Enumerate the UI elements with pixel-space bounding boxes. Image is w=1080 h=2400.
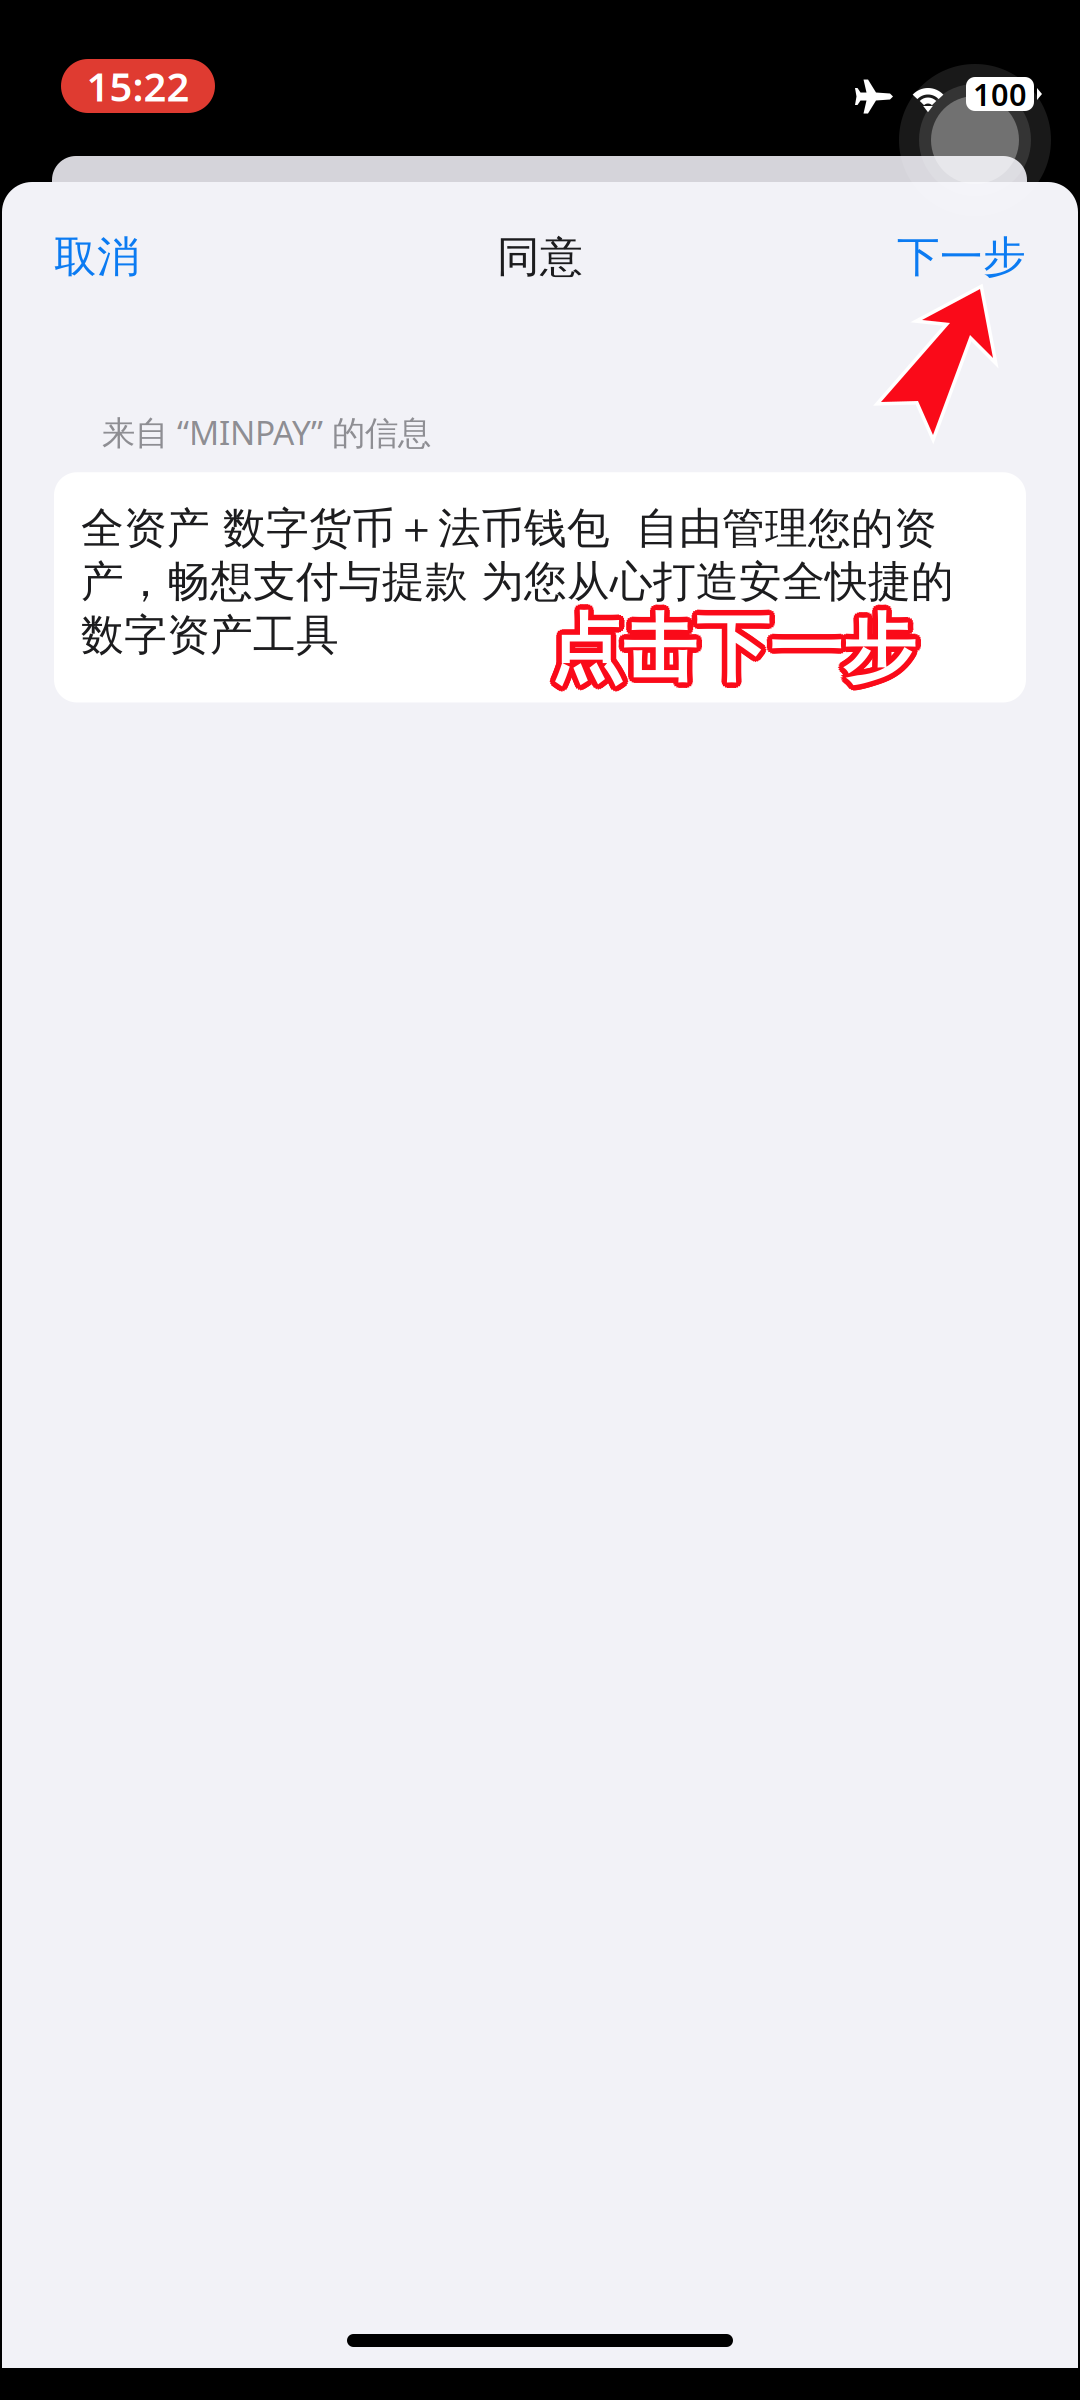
staticText: 点击下一步 <box>554 600 919 690</box>
button[interactable]: AssistiveTouch <box>899 64 1051 216</box>
staticText: 取消 <box>54 231 140 283</box>
staticText: 100 <box>973 74 1027 114</box>
staticText: 全资产 数字货币＋法币钱包 自由管理您的资 产，畅想支付与提款 为您从心打造安全… <box>81 502 954 661</box>
staticText: 点击下一步 <box>545 606 910 696</box>
staticText: 点击下一步 <box>548 599 913 689</box>
staticText: 点击下一步 <box>550 604 915 694</box>
staticText: 下一步 <box>897 231 1026 283</box>
button[interactable]: 下一步 <box>875 207 1048 307</box>
staticText: 点击下一步 <box>554 608 919 698</box>
staticText: 同意 <box>497 231 583 283</box>
button[interactable]: 取消 <box>32 207 162 307</box>
staticText: 点击下一步 <box>552 599 917 689</box>
staticText: 点击下一步 <box>546 608 911 698</box>
staticText: 来自 “MINPAY” 的信息 <box>102 410 431 454</box>
staticText: 15:22 <box>86 59 189 112</box>
staticText: 点击下一步 <box>548 609 913 699</box>
staticText: 点击下一步 <box>550 598 915 689</box>
staticText: 点击下一步 <box>552 609 917 699</box>
staticText: 点击下一步 <box>555 606 920 696</box>
staticText: 点击下一步 <box>555 602 920 692</box>
staticText: 点击下一步 <box>550 609 915 700</box>
staticText: 点击下一步 <box>555 604 920 694</box>
staticText: 点击下一步 <box>546 600 911 690</box>
staticText: 点击下一步 <box>544 604 909 694</box>
staticText: 点击下一步 <box>545 602 910 692</box>
